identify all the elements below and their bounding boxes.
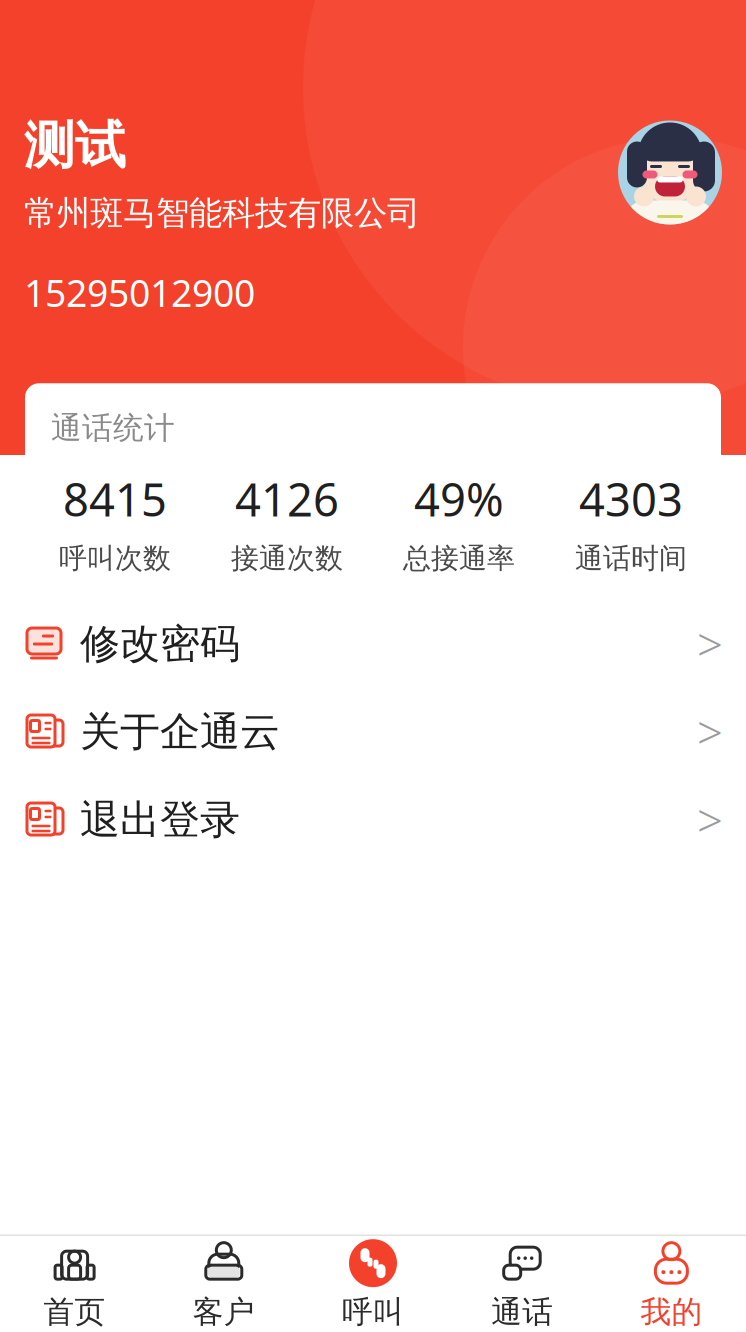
staticText: 我的 bbox=[640, 1293, 702, 1331]
button[interactable]: 退出登录 bbox=[0, 776, 746, 864]
button[interactable]: 呼叫 bbox=[298, 1236, 448, 1332]
staticText: 修改密码 bbox=[80, 619, 240, 668]
button[interactable]: 修改密码 bbox=[0, 600, 746, 688]
staticText: 接通次数 bbox=[231, 541, 343, 575]
staticText: 常州斑马智能科技有限公司 bbox=[24, 193, 420, 234]
staticText: 通话 bbox=[491, 1293, 553, 1331]
button[interactable]: 关于企通云 bbox=[0, 688, 746, 776]
staticText: 退出登录 bbox=[80, 795, 240, 844]
staticText: 4303 bbox=[579, 469, 683, 529]
staticText: 15295012900 bbox=[24, 268, 255, 317]
staticText: 49% bbox=[414, 469, 504, 529]
button[interactable]: 客户 bbox=[149, 1236, 298, 1332]
staticText: 客户 bbox=[193, 1293, 255, 1331]
staticText: 通话时间 bbox=[575, 541, 687, 575]
staticText: 关于企通云 bbox=[80, 707, 280, 756]
button[interactable]: 首页 bbox=[0, 1236, 149, 1332]
staticText: 总接通率 bbox=[403, 541, 515, 575]
button[interactable]: 我的 bbox=[597, 1236, 746, 1332]
staticText: 4126 bbox=[235, 469, 339, 529]
staticText: 通话统计 bbox=[51, 409, 175, 447]
staticText: 测试 bbox=[24, 114, 126, 177]
staticText: 呼叫 bbox=[342, 1293, 404, 1331]
button[interactable]: 通话 bbox=[448, 1236, 597, 1332]
staticText: > bbox=[697, 702, 723, 762]
staticText: > bbox=[697, 790, 723, 850]
staticText: > bbox=[697, 614, 723, 674]
staticText: 呼叫次数 bbox=[59, 541, 171, 575]
staticText: 首页 bbox=[44, 1293, 106, 1331]
staticText: 8415 bbox=[63, 469, 167, 529]
